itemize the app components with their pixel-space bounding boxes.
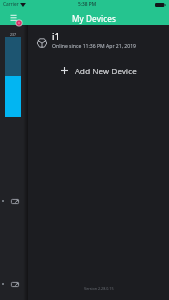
button[interactable]: Add New Device [28,60,169,80]
staticText: Carrier [3,1,19,8]
staticText: i1 [52,30,60,43]
staticText: 237 [10,32,17,37]
button[interactable]: i1 [28,29,169,53]
staticText: Version 2.28.0.15 [84,286,114,291]
button[interactable]: Drawer item [0,279,26,291]
staticText: My Devices [72,13,116,24]
button[interactable]: Menu [6,11,22,24]
staticText: Add New Device [75,65,137,76]
staticText: 5:38 PM [78,1,97,8]
staticText: Online since 11:36 PM Apr 21, 2019 [52,43,137,50]
button[interactable]: Drawer item [0,196,26,208]
